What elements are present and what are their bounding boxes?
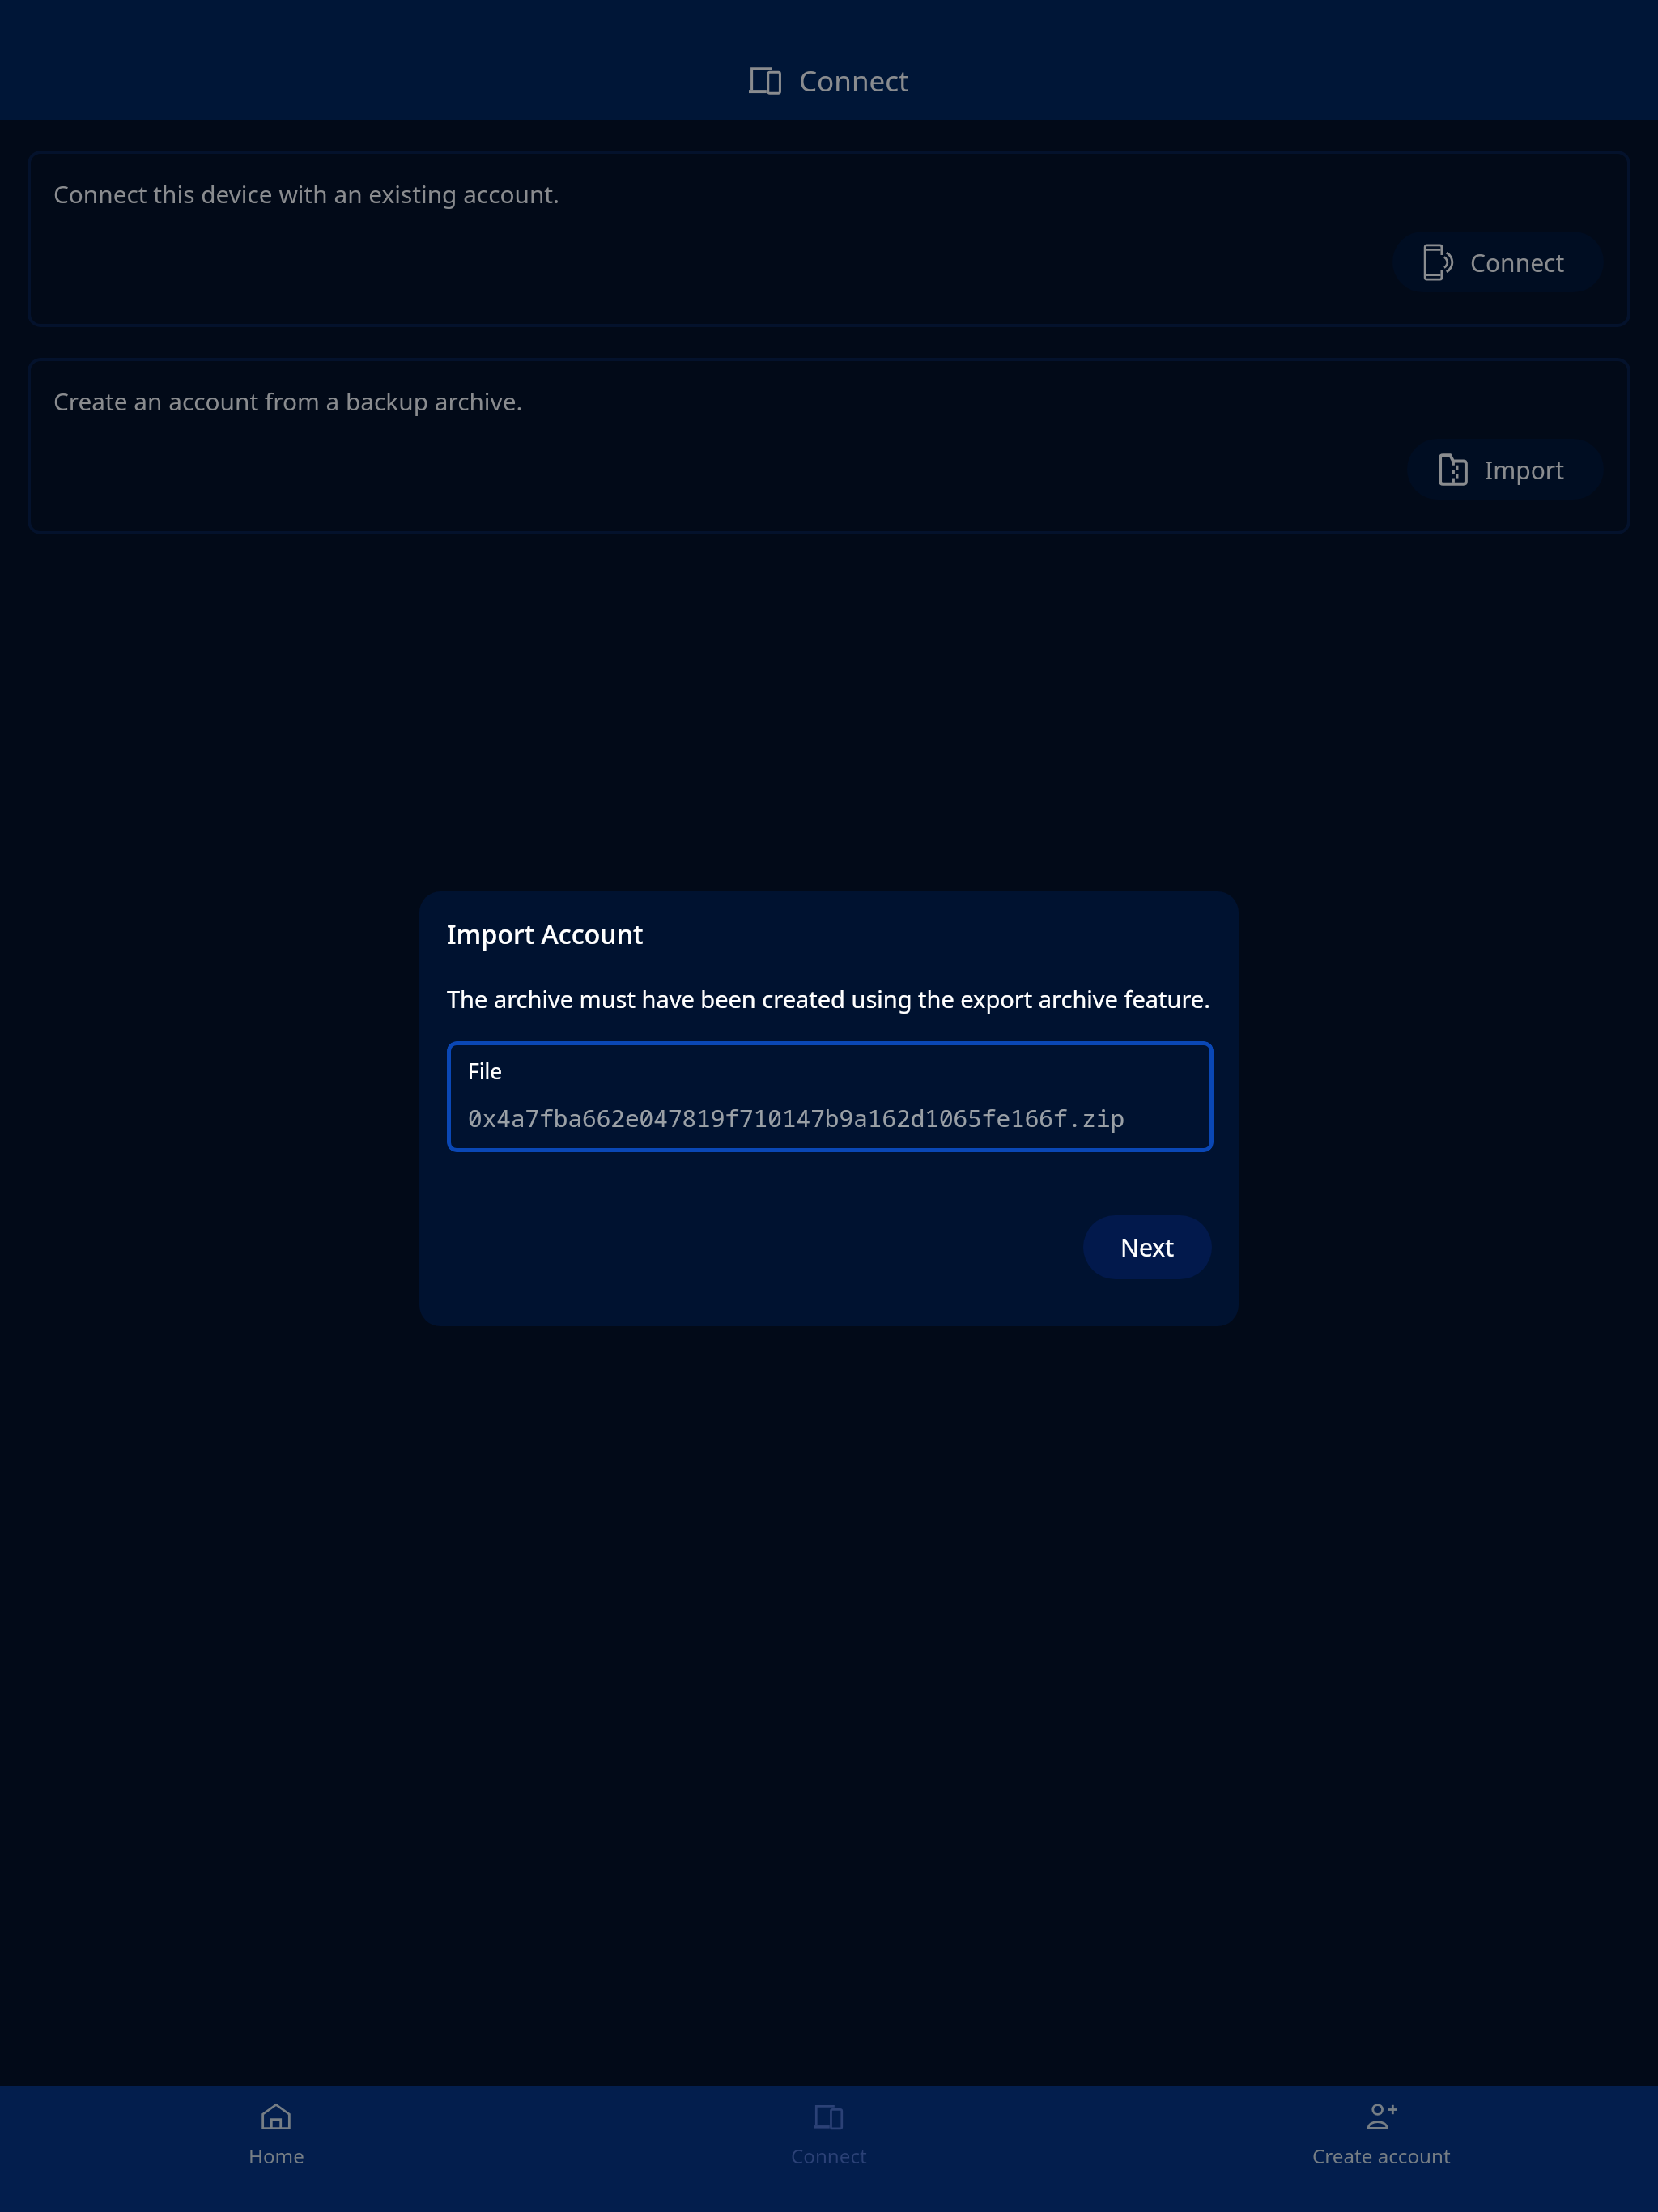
- staticText: 0x4a7fba662e047819f710147b9a162d1065fe16…: [468, 1102, 1125, 1134]
- staticText: The archive must have been created using…: [447, 983, 1210, 1015]
- staticText: File: [468, 1057, 503, 1086]
- button[interactable]: Home: [0, 2086, 552, 2212]
- button[interactable]: Connect: [1392, 232, 1604, 292]
- staticText: Connect this device with an existing acc…: [53, 177, 560, 211]
- staticText: Import: [1485, 453, 1565, 487]
- button[interactable]: File: [447, 1041, 1214, 1152]
- staticText: Next: [1120, 1231, 1175, 1264]
- staticText: Connect: [791, 2142, 867, 2169]
- staticText: Import Account: [447, 916, 644, 951]
- staticText: Create an account from a backup archive.: [53, 385, 523, 418]
- staticText: Connect: [799, 62, 909, 100]
- button[interactable]: Create account: [1105, 2086, 1658, 2212]
- other: Connected devices: [749, 64, 783, 98]
- staticText: Connect: [1470, 246, 1565, 279]
- staticText: Create account: [1312, 2142, 1451, 2169]
- button[interactable]: Next: [1083, 1215, 1212, 1279]
- staticText: Home: [249, 2142, 304, 2169]
- button[interactable]: Connect: [552, 2086, 1105, 2212]
- button[interactable]: Import: [1407, 439, 1604, 500]
